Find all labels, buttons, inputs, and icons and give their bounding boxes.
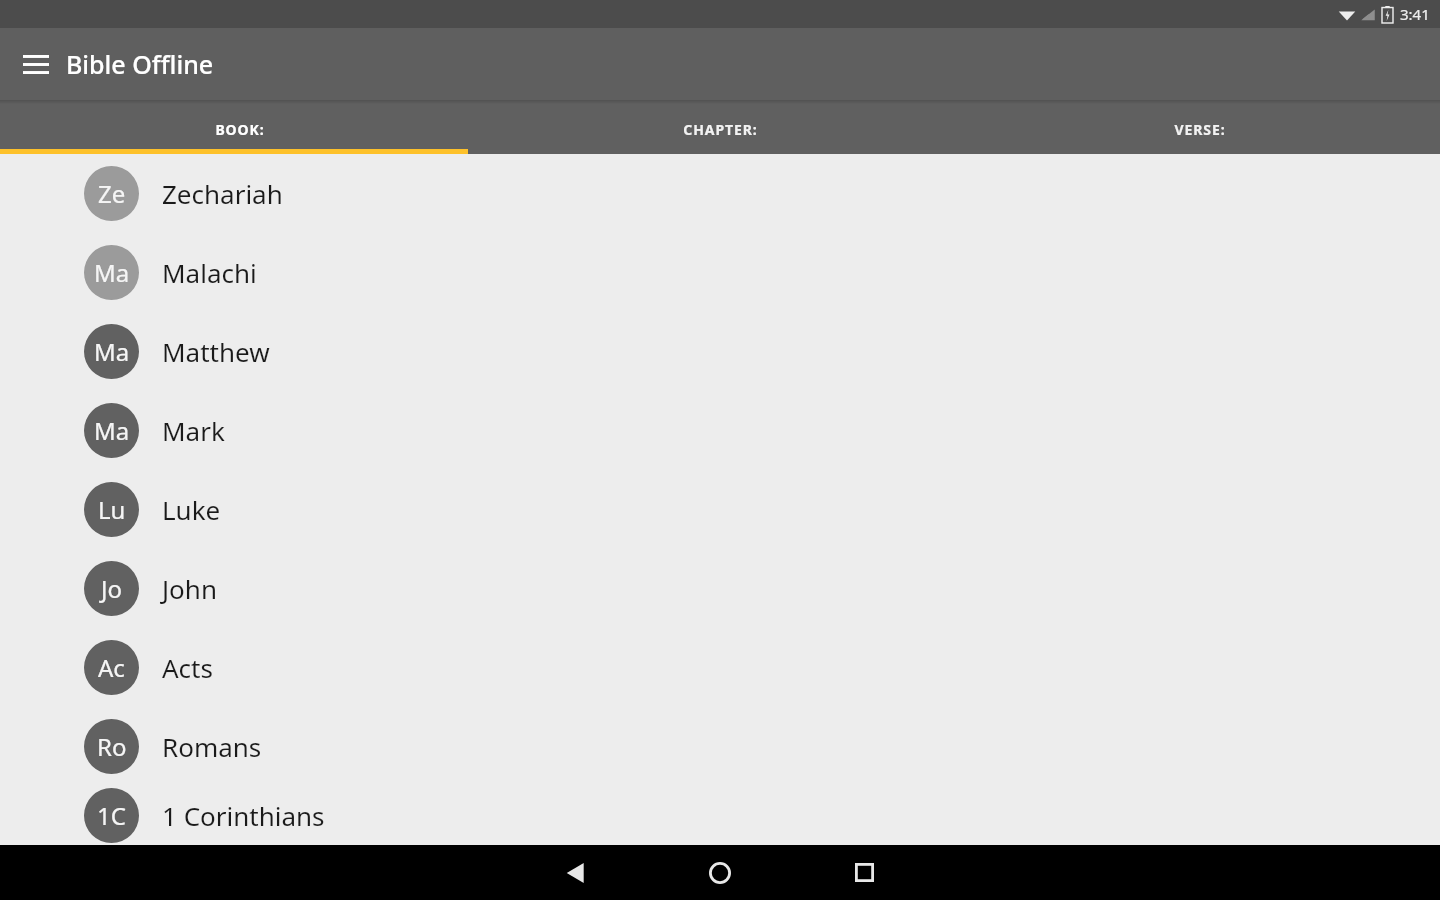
button[interactable]: Ma — [0, 391, 1440, 470]
staticText: Mark — [162, 413, 225, 448]
staticText: Malachi — [162, 255, 257, 290]
staticText: Ma — [94, 256, 130, 289]
staticText: John — [162, 571, 217, 606]
staticText: Ze — [98, 177, 126, 210]
staticText: Jo — [101, 572, 123, 605]
staticText: BOOK: — [215, 120, 265, 139]
staticText: Lu — [98, 493, 126, 526]
button[interactable]: CHAPTER: — [480, 104, 960, 154]
button[interactable]: Ma — [0, 312, 1440, 391]
staticText: VERSE: — [1174, 120, 1226, 139]
staticText: Acts — [162, 650, 213, 685]
staticText: Matthew — [162, 334, 270, 369]
button[interactable]: Recent apps — [836, 845, 892, 900]
button[interactable]: 1C — [0, 786, 1440, 845]
button[interactable]: Jo — [0, 549, 1440, 628]
button[interactable]: Ac — [0, 628, 1440, 707]
button[interactable]: Lu — [0, 470, 1440, 549]
staticText: Ma — [94, 335, 130, 368]
button[interactable]: Ze — [0, 154, 1440, 233]
staticText: Luke — [162, 492, 221, 527]
staticText: Ma — [94, 414, 130, 447]
staticText: 3:41 — [1400, 4, 1430, 24]
staticText: Zechariah — [162, 176, 283, 211]
button[interactable]: Ro — [0, 707, 1440, 786]
staticText: CHAPTER: — [683, 120, 758, 139]
button[interactable]: VERSE: — [960, 104, 1440, 154]
button[interactable]: Back — [548, 845, 604, 900]
button[interactable]: BOOK: — [0, 104, 480, 154]
staticText: Bible Offline — [66, 47, 214, 81]
staticText: Ro — [97, 730, 127, 763]
staticText: 1C — [97, 799, 126, 832]
staticText: Romans — [162, 729, 262, 764]
staticText: 1 Corinthians — [162, 798, 325, 833]
button[interactable]: Ma — [0, 233, 1440, 312]
staticText: Ac — [98, 651, 125, 684]
button[interactable]: Home — [692, 845, 748, 900]
button[interactable]: Open navigation drawer — [12, 40, 60, 88]
